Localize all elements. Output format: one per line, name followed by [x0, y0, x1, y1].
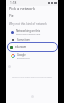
button[interactable]: Some item	[6, 37, 58, 43]
staticText: Networking on this	[16, 29, 41, 33]
staticText: eduroam	[15, 45, 27, 49]
staticText: Some item	[17, 38, 31, 42]
staticText: Why not this kind of network	[9, 22, 47, 26]
staticText: Pick a network	[9, 6, 35, 11]
staticText: some more details here	[16, 33, 41, 36]
staticText: account sync	[17, 57, 30, 60]
button[interactable]: Networking on this	[6, 28, 58, 36]
staticText: Pie	[9, 14, 14, 18]
staticText: 1:18	[10, 1, 17, 5]
button[interactable]: eduroam	[7, 42, 58, 52]
staticText: Google	[17, 53, 26, 57]
button[interactable]: Google	[6, 52, 58, 60]
staticText: Stay in the safe area of this screen	[6, 75, 58, 78]
